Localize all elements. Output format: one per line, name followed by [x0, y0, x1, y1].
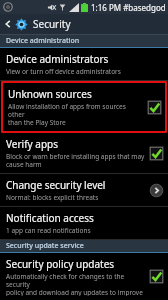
staticText: View or turn off device administrators [6, 67, 121, 76]
button[interactable]: Toggle setting [147, 100, 162, 115]
button[interactable]: Back to Settings [0, 14, 168, 34]
staticText: Unknown sources [8, 87, 92, 101]
button[interactable]: Toggle setting [149, 146, 164, 161]
staticText: Security policy updates [6, 257, 115, 271]
button[interactable]: Notification access [0, 207, 168, 240]
staticText: Device administration [6, 36, 80, 46]
button[interactable]: Security policy updates [0, 253, 168, 300]
staticText: Allow installation of apps from sources … [8, 102, 143, 127]
staticText: Verify apps [6, 137, 58, 151]
button[interactable]: Change security level [149, 183, 164, 198]
staticText: Device administrators [6, 52, 109, 66]
staticText: 1 app can read notifications [6, 226, 91, 235]
button[interactable]: Toggle setting [149, 269, 164, 284]
button[interactable]: Device administrators [0, 48, 168, 81]
button[interactable]: Change security level [0, 174, 168, 207]
button[interactable]: Verify apps [0, 133, 168, 174]
button[interactable]: Unknown sources [3, 83, 165, 131]
staticText: Block or warn before installing apps tha… [6, 152, 145, 169]
staticText: Change security level [6, 178, 106, 192]
staticText: Normal: blocks explicit threats [6, 193, 99, 202]
staticText: Security [33, 17, 71, 31]
staticText: Notification access [6, 211, 94, 225]
staticText: 1:16 PM #basedgod [91, 2, 166, 13]
staticText: Automatically check for changes to the s… [6, 272, 145, 296]
staticText: Security update service [6, 241, 84, 251]
